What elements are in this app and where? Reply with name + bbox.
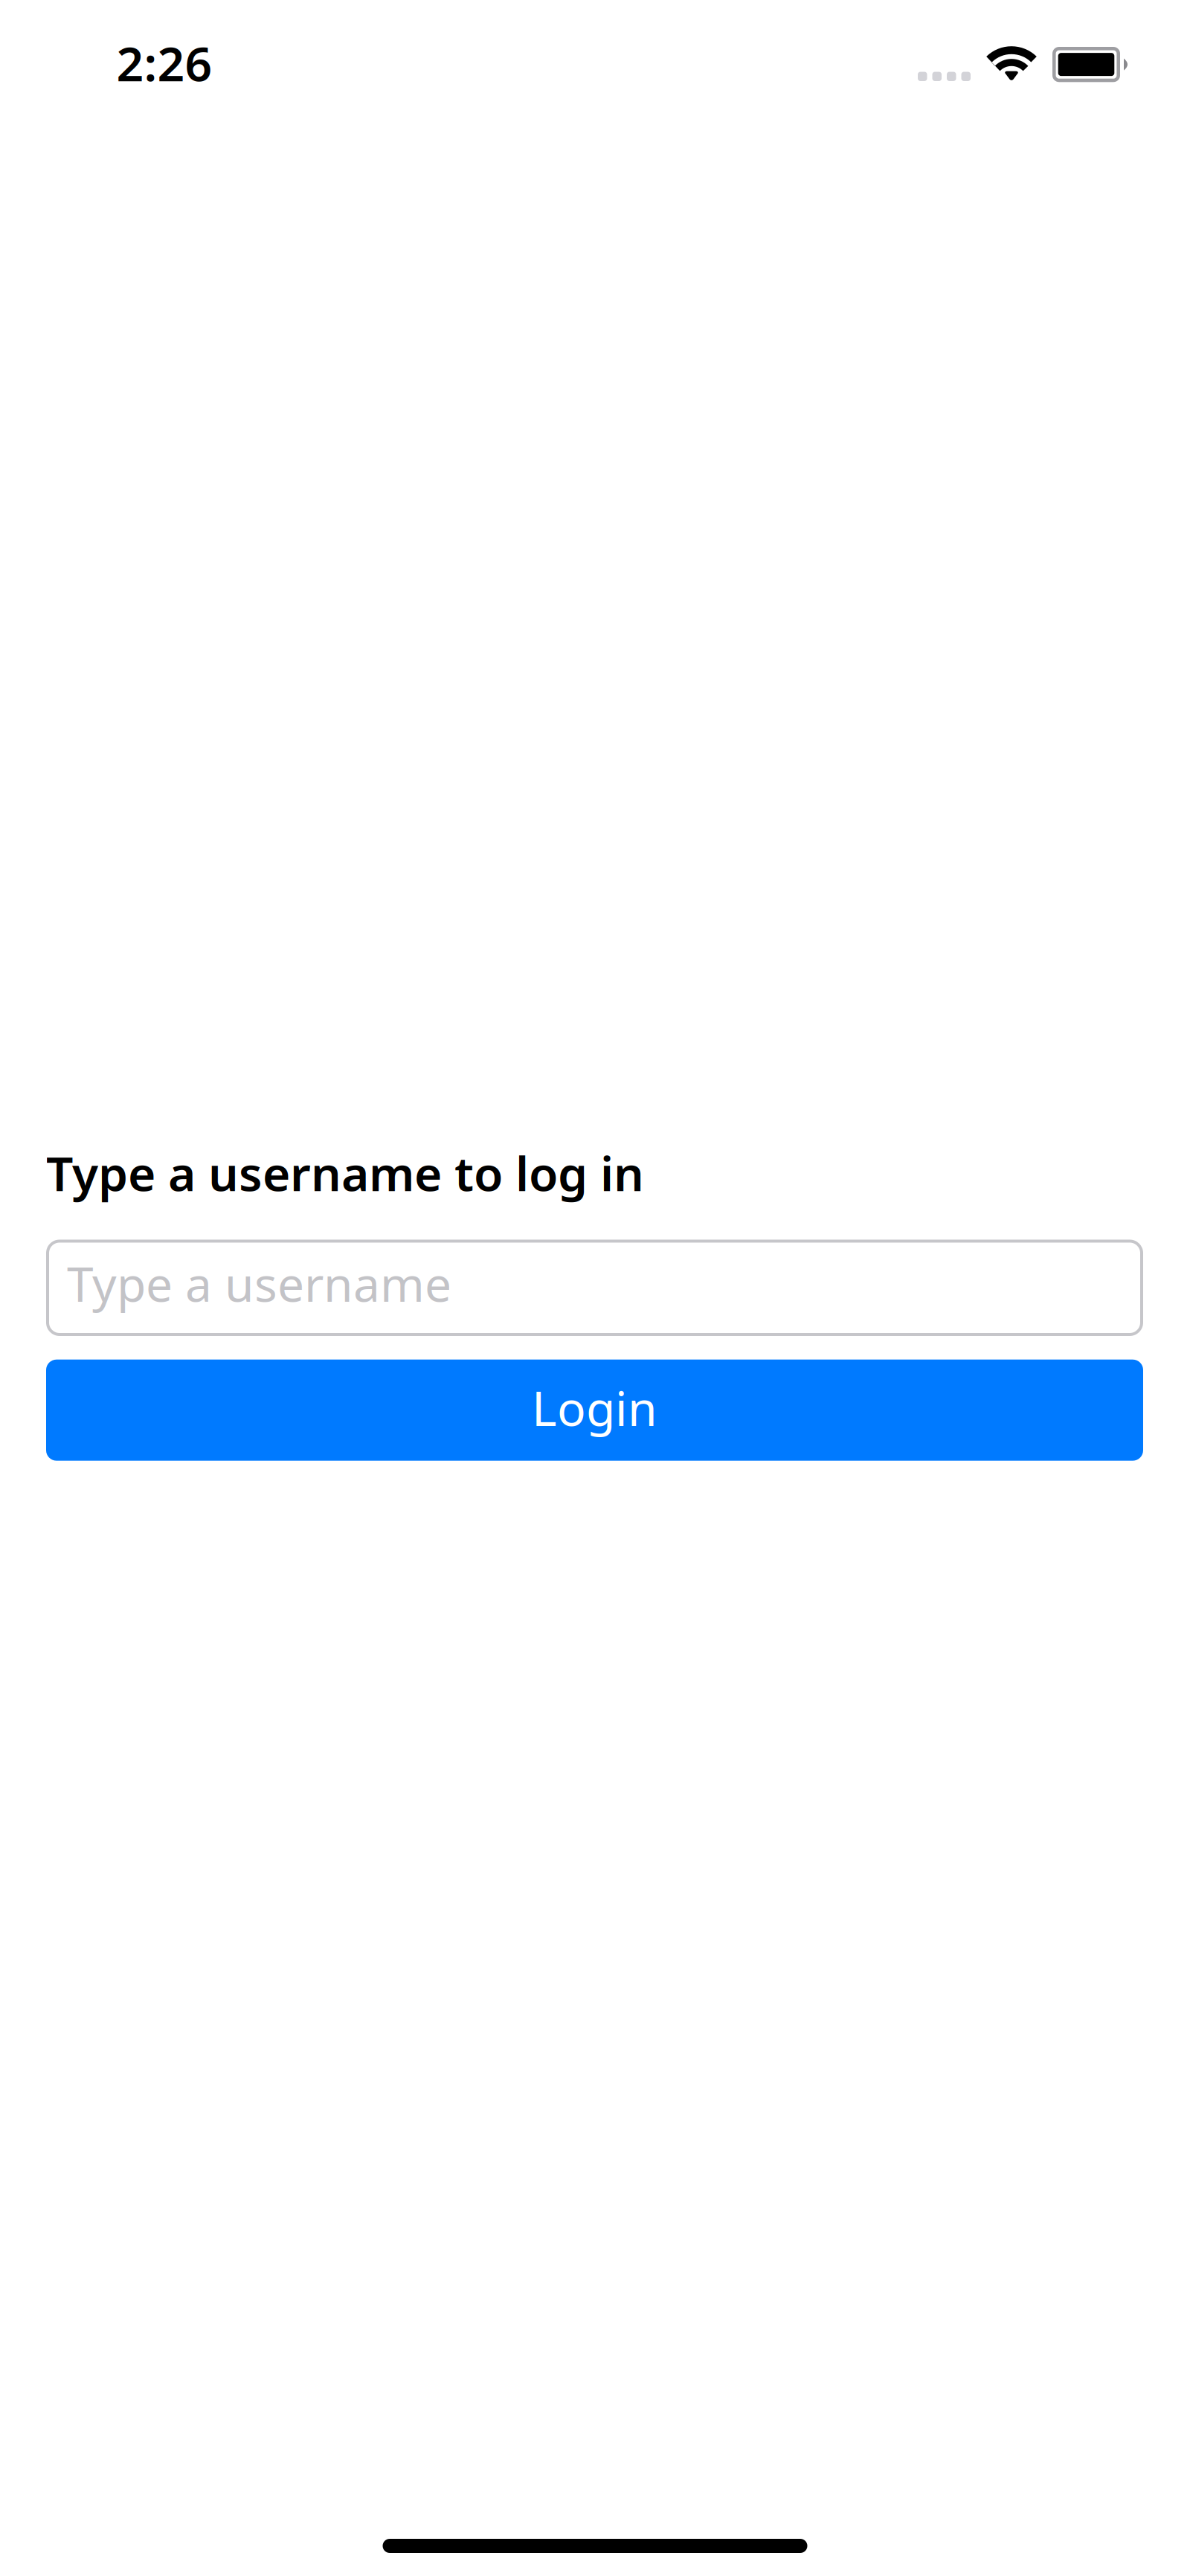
staticText: Type a username: [67, 1252, 451, 1315]
staticText: 2:26: [116, 31, 212, 94]
staticText: Type a username to log in: [46, 1141, 644, 1204]
button[interactable]: Type a username: [46, 1241, 1143, 1334]
button[interactable]: Login: [46, 1360, 1143, 1461]
staticText: Login: [532, 1376, 657, 1439]
